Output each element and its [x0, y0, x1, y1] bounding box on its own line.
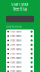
staticText: Item name — [10, 30, 21, 33]
staticText: free trial — [13, 7, 27, 12]
staticText: Item name — [10, 34, 21, 38]
staticText: Start your — [11, 2, 29, 7]
staticText: Item name — [10, 65, 21, 68]
staticText: Item name — [10, 39, 21, 42]
staticText: Item name — [10, 56, 21, 60]
staticText: Item name — [10, 48, 21, 51]
staticText: Item name — [10, 61, 21, 64]
staticText: OVERVIEW — [6, 25, 22, 28]
staticText: Item name — [10, 70, 21, 72]
staticText: Item name — [10, 43, 21, 46]
staticText: Item name — [10, 52, 21, 55]
